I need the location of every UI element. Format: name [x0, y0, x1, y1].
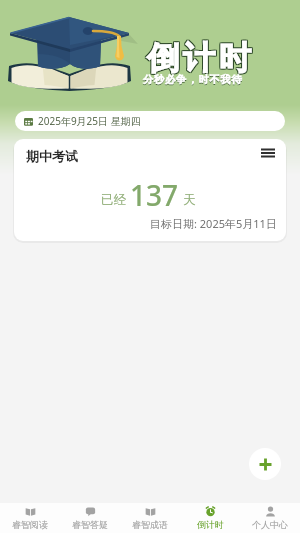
staticText: 睿智阅读 — [12, 519, 48, 530]
staticText: 倒计时 — [144, 37, 252, 77]
button[interactable]: 睿智阅读 — [0, 503, 60, 533]
staticText: 倒计时 — [146, 39, 254, 79]
staticText: 倒计时 — [144, 38, 252, 78]
staticText: 2025年9月25日 星期四 — [38, 114, 141, 128]
staticText: 倒计时 — [145, 37, 253, 77]
button[interactable]: 个人中心 — [240, 503, 300, 533]
staticText: 已经 — [101, 192, 126, 208]
staticText: 个人中心 — [252, 519, 288, 530]
button[interactable]: 倒计时 — [180, 503, 240, 533]
button[interactable]: 睿智成语 — [120, 503, 180, 533]
button[interactable]: 添加 — [249, 448, 281, 480]
button[interactable]: 2025年9月25日 星期四 — [15, 111, 285, 131]
staticText: 倒计时 — [145, 39, 253, 79]
button[interactable]: 期中考试 — [14, 139, 286, 241]
staticText: 137 — [130, 176, 179, 214]
staticText: 倒计时 — [146, 37, 254, 77]
staticText: 睿智成语 — [132, 519, 168, 530]
staticText: 倒计时 — [144, 39, 252, 79]
staticText: 期中考试 — [26, 148, 78, 164]
staticText: 分秒必争，时不我待 — [143, 74, 243, 87]
staticText: 倒计时 — [145, 38, 253, 78]
staticText: 分秒必争，时不我待 — [143, 73, 243, 86]
button[interactable]: 更多 — [258, 143, 278, 163]
staticText: 目标日期: 2025年5月11日 — [150, 216, 277, 231]
staticText: 天 — [183, 192, 196, 208]
staticText: 睿智答疑 — [72, 519, 108, 530]
staticText: 倒计时 — [197, 519, 224, 530]
staticText: 倒计时 — [146, 38, 254, 78]
button[interactable]: 睿智答疑 — [60, 503, 120, 533]
